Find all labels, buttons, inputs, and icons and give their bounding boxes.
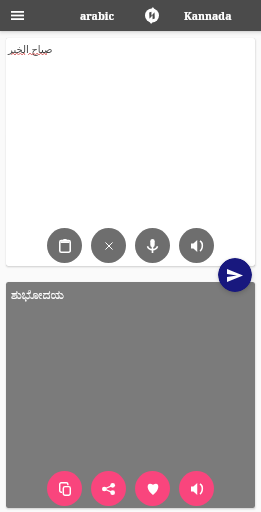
staticText: Kannada [184,9,232,23]
staticText: arabic [80,9,114,23]
button[interactable]: Kannada [172,0,243,31]
button[interactable]: Menu [3,1,32,30]
button[interactable]: Listen [179,471,214,506]
button[interactable]: Voice input [135,228,170,263]
staticText: ಶುಭೋದಯ [11,289,64,302]
button[interactable]: Favourite [135,471,170,506]
button[interactable]: Share [91,471,126,506]
button[interactable]: Swap languages [137,0,166,31]
button[interactable]: Listen [179,228,214,263]
button[interactable]: Clear text [91,228,126,263]
button[interactable]: arabic [62,0,132,31]
button[interactable]: Copy [47,471,82,506]
button[interactable]: Paste [47,228,82,263]
button[interactable]: Translate [218,258,252,292]
staticText: صباح الخير [8,42,53,56]
